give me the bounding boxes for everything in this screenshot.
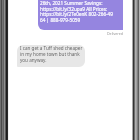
staticText: 26th, 2021 Summer Savings: (40, 0, 103, 6)
staticText: you anyway. (20, 57, 47, 63)
staticText: https://bit.ly/2Te0enK 802-266-49 (40, 11, 113, 17)
staticText: 64 | 888-979-5059 (40, 17, 81, 23)
button[interactable]: I can get a Tuff shed cheaper (17, 45, 85, 67)
staticText: Delivered (107, 31, 124, 36)
staticText: I can get a Tuff shed cheaper (20, 45, 83, 51)
staticText: https://bit.ly/32upa9 All Prices: (40, 6, 108, 12)
staticText: in my home town but thank (20, 51, 80, 57)
button[interactable]: 26th, 2021 Summer Savings: (38, 0, 123, 30)
